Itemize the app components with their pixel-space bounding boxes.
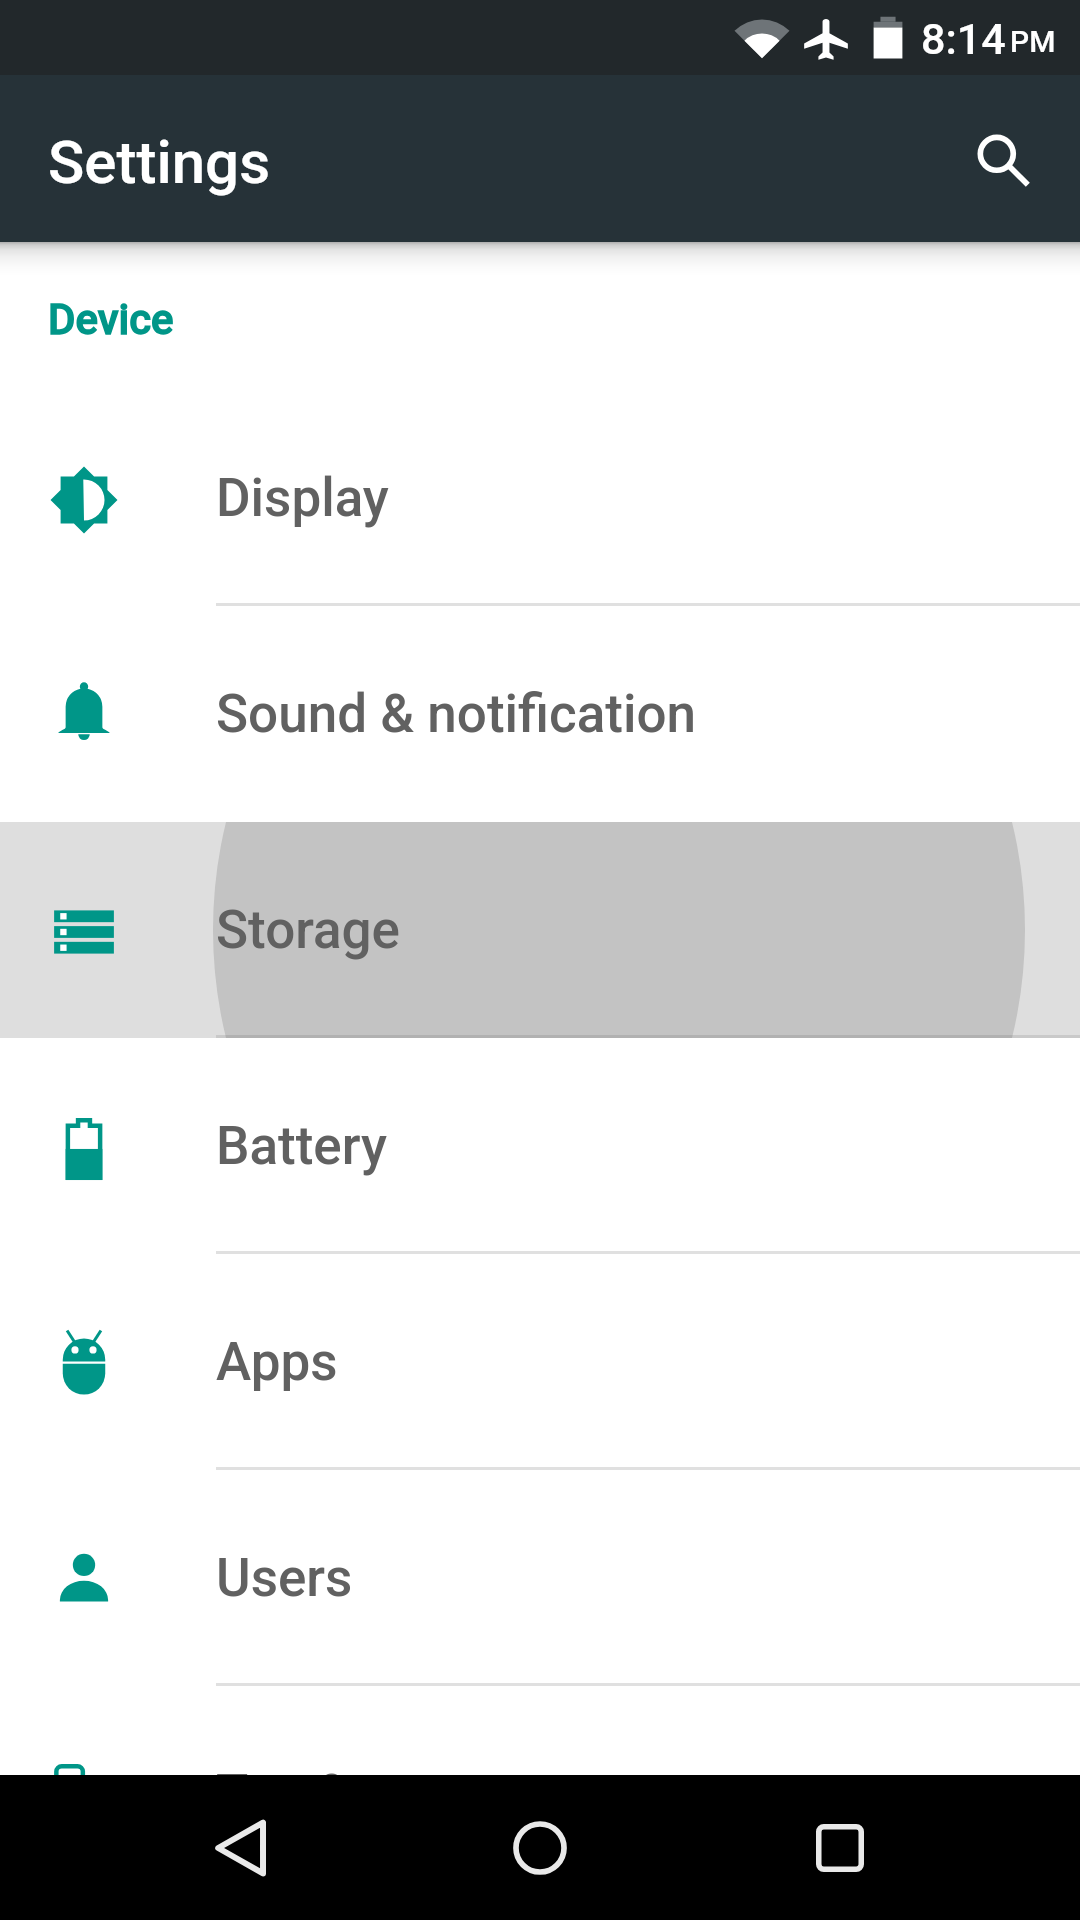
staticText: 8:14: [921, 14, 1006, 64]
staticText: Users: [216, 1547, 353, 1609]
button[interactable]: Back: [120, 1775, 360, 1920]
button[interactable]: Storage: [0, 822, 1080, 1038]
button[interactable]: Apps: [0, 1254, 1080, 1470]
button[interactable]: Search: [946, 103, 1058, 215]
button[interactable]: Recent apps: [720, 1775, 960, 1920]
staticText: Sound & notification: [216, 683, 697, 745]
staticText: Battery: [216, 1115, 387, 1177]
button[interactable]: Battery: [0, 1038, 1080, 1254]
button[interactable]: Home: [420, 1775, 660, 1920]
staticText: Storage: [216, 899, 400, 961]
button[interactable]: Sound & notification: [0, 606, 1080, 822]
staticText: Apps: [216, 1331, 338, 1393]
staticText: Device: [48, 295, 174, 344]
button[interactable]: Tap & pay: [0, 1686, 1080, 1775]
button[interactable]: Display: [0, 390, 1080, 606]
staticText: PM: [1010, 24, 1056, 59]
staticText: Display: [216, 467, 389, 529]
button[interactable]: Users: [0, 1470, 1080, 1686]
staticText: Tap & pay: [216, 1763, 448, 1775]
staticText: Settings: [48, 127, 271, 197]
